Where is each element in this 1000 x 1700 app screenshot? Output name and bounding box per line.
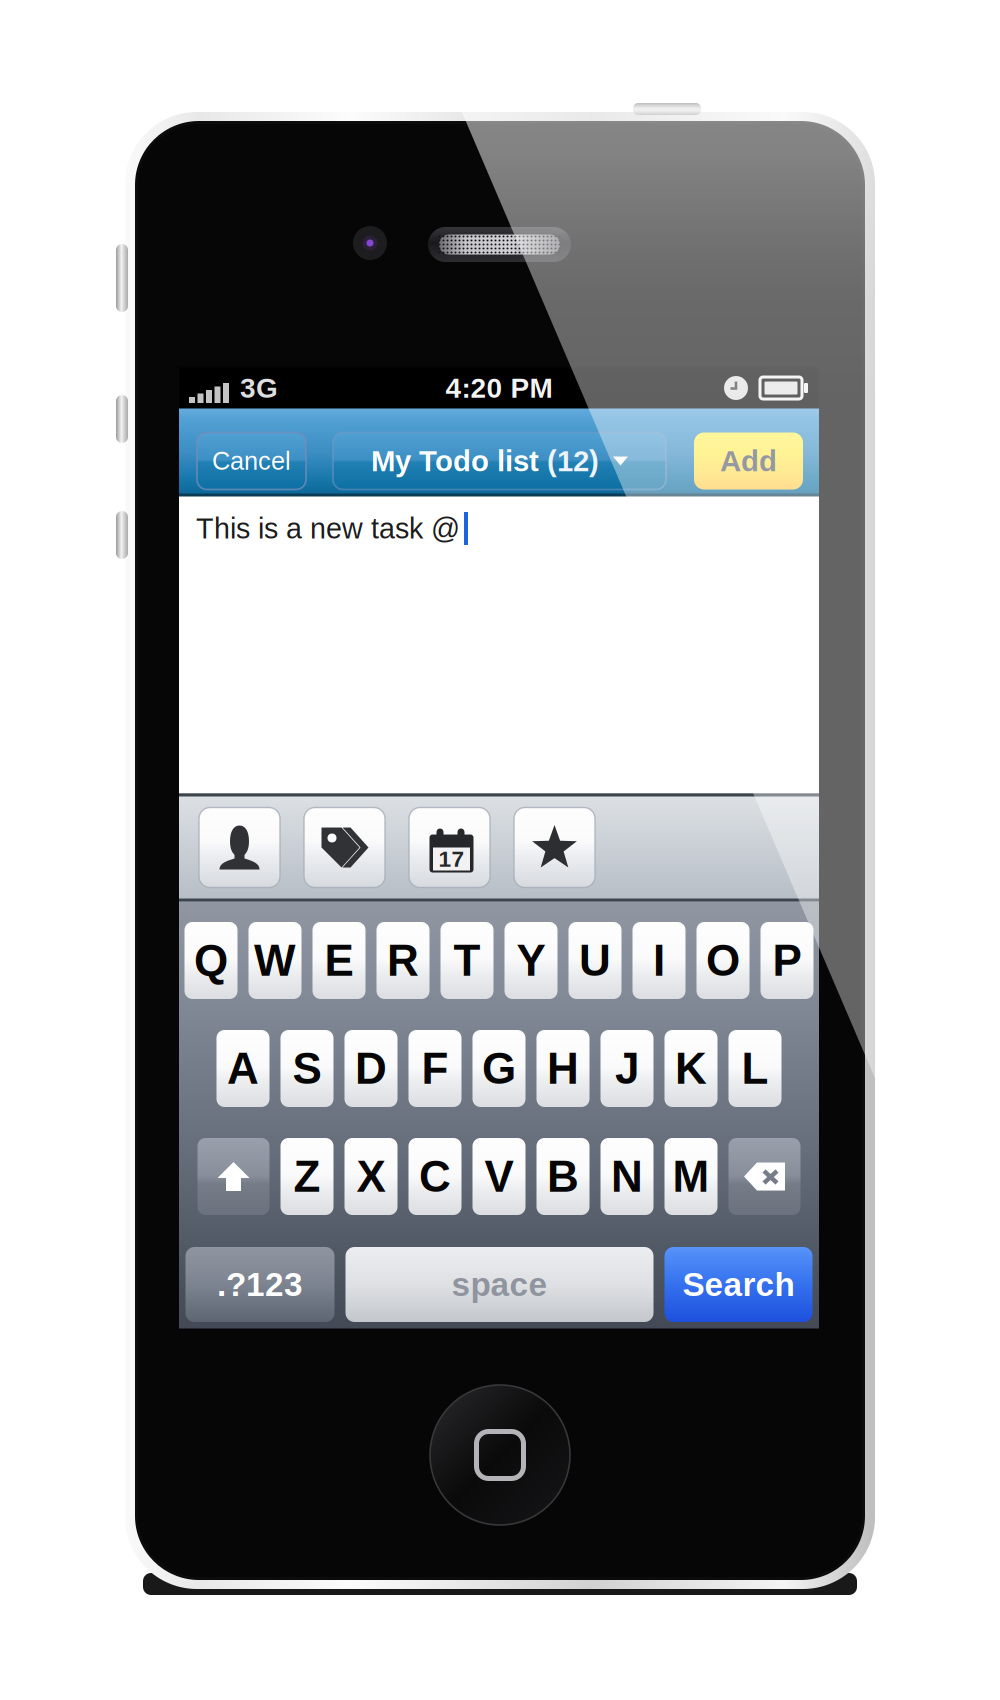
button[interactable]: A (216, 1030, 269, 1107)
button[interactable]: Y (504, 922, 557, 999)
staticText: Search (682, 1266, 794, 1303)
button[interactable]: S (280, 1030, 333, 1107)
staticText: L (741, 1044, 768, 1093)
button[interactable]: space (345, 1247, 653, 1322)
staticText: E (324, 936, 353, 985)
staticText: U (579, 936, 611, 985)
staticText: F (421, 1044, 448, 1093)
button[interactable]: Tag (304, 807, 385, 887)
button[interactable]: Shift (197, 1138, 269, 1215)
staticText: B (547, 1152, 579, 1201)
button[interactable]: P (760, 922, 813, 999)
staticText: J (615, 1044, 639, 1093)
staticText: (12) (539, 445, 599, 477)
button[interactable]: Z (280, 1138, 333, 1215)
button[interactable]: R (376, 922, 429, 999)
button[interactable]: N (600, 1138, 653, 1215)
button[interactable]: Delete (728, 1138, 800, 1215)
button[interactable]: L (728, 1030, 781, 1107)
staticText: Q (194, 936, 228, 985)
staticText: I (653, 936, 665, 985)
staticText: P (772, 936, 801, 985)
button[interactable]: Add (694, 432, 803, 489)
button[interactable]: D (344, 1030, 397, 1107)
button[interactable]: C (408, 1138, 461, 1215)
staticText: M (672, 1152, 709, 1201)
staticText: space (451, 1266, 547, 1303)
button[interactable]: Q (184, 922, 237, 999)
button[interactable]: W (248, 922, 301, 999)
button[interactable]: G (472, 1030, 525, 1107)
staticText: N (611, 1152, 643, 1201)
button[interactable]: O (696, 922, 749, 999)
staticText: This is a new task @ (196, 512, 460, 544)
button[interactable]: .?123 (185, 1247, 334, 1322)
staticText: S (292, 1044, 321, 1093)
button[interactable]: F (408, 1030, 461, 1107)
staticText: T (453, 936, 480, 985)
staticText: My Todo list (371, 445, 539, 477)
button[interactable]: Due date (409, 807, 490, 887)
staticText: C (419, 1152, 451, 1201)
button[interactable]: H (536, 1030, 589, 1107)
button[interactable]: B (536, 1138, 589, 1215)
button[interactable]: X (344, 1138, 397, 1215)
button[interactable]: E (312, 922, 365, 999)
staticText: Cancel (212, 447, 291, 475)
button[interactable]: Search (664, 1247, 812, 1322)
staticText: V (484, 1152, 513, 1201)
staticText: H (547, 1044, 579, 1093)
staticText: Add (720, 445, 777, 477)
staticText: R (387, 936, 419, 985)
button[interactable]: T (440, 922, 493, 999)
staticText: .?123 (217, 1266, 303, 1303)
staticText: A (227, 1044, 259, 1093)
button[interactable]: Cancel (197, 432, 306, 489)
button[interactable]: My Todo list (333, 432, 666, 489)
staticText: X (356, 1152, 385, 1201)
staticText: 17 (438, 846, 464, 872)
staticText: 3G (240, 372, 278, 404)
button[interactable]: Contact (199, 807, 280, 887)
button[interactable]: M (664, 1138, 717, 1215)
staticText: 4:20 PM (445, 372, 552, 404)
button[interactable]: I (632, 922, 685, 999)
button[interactable]: Priority (514, 807, 595, 887)
staticText: Z (293, 1152, 320, 1201)
button[interactable]: J (600, 1030, 653, 1107)
staticText: G (482, 1044, 516, 1093)
button[interactable]: U (568, 922, 621, 999)
staticText: O (706, 936, 740, 985)
staticText: Y (516, 936, 545, 985)
button[interactable]: K (664, 1030, 717, 1107)
staticText: D (355, 1044, 387, 1093)
button[interactable]: V (472, 1138, 525, 1215)
staticText: W (254, 936, 296, 985)
staticText: K (675, 1044, 707, 1093)
